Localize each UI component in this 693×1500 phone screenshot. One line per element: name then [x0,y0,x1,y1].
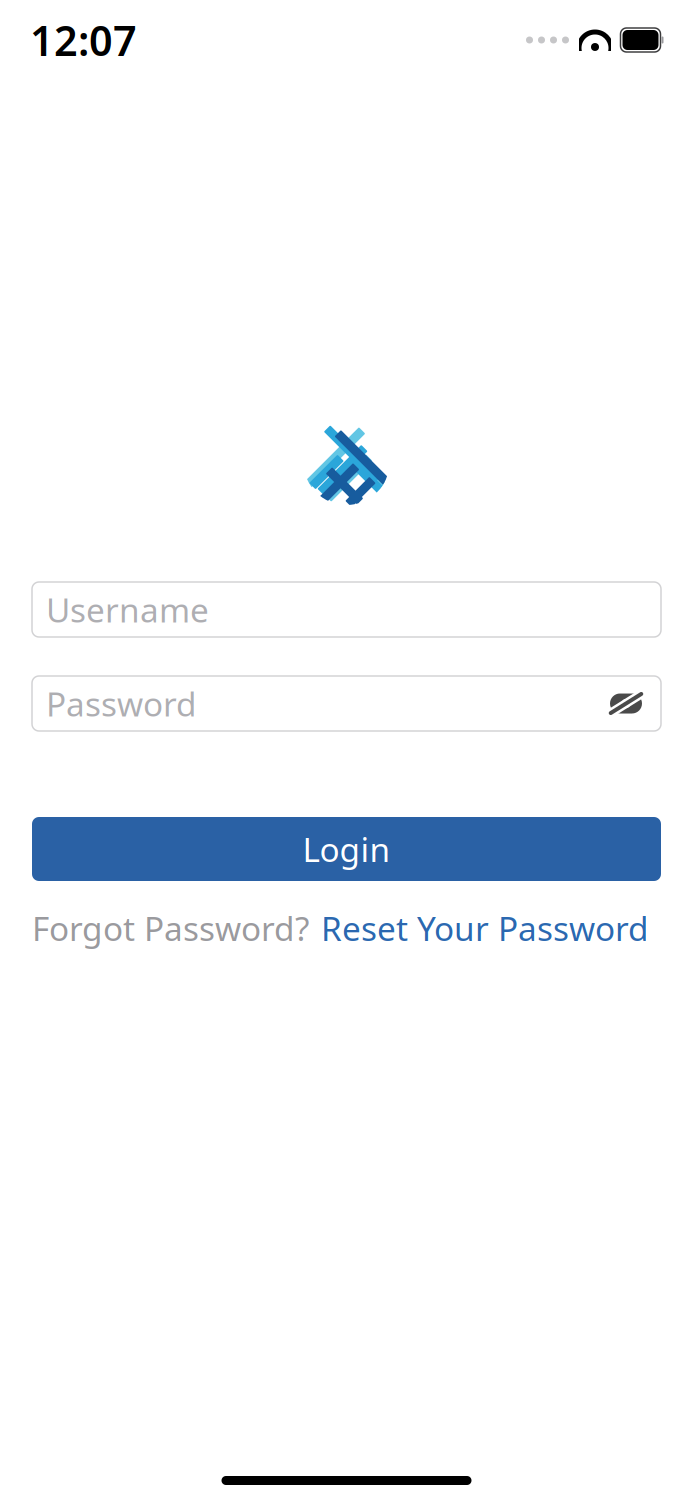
staticText: Password [46,681,197,726]
button[interactable]: Reset Your Password [321,906,649,950]
staticText: Reset Your Password [321,906,649,950]
button[interactable]: Show password [605,682,647,724]
staticText: Username [46,587,209,632]
staticText: Login [302,827,390,871]
staticText: Forgot Password? [32,906,309,950]
button[interactable]: Login [32,817,661,881]
staticText: 12:07 [30,13,137,67]
